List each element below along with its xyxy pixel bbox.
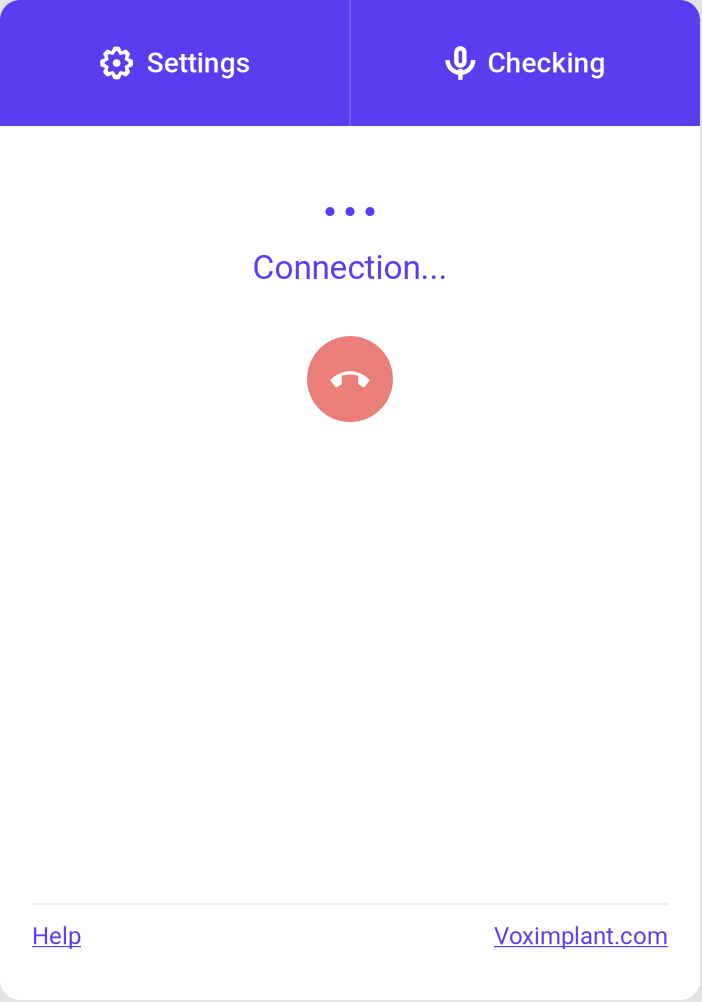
button[interactable]: End call <box>307 336 393 422</box>
button[interactable]: Checking <box>351 0 700 126</box>
staticText: Voximplant.com <box>494 922 668 950</box>
button[interactable]: Voximplant.com <box>494 922 668 950</box>
staticText: Connection... <box>252 248 447 287</box>
button[interactable]: Settings <box>0 0 349 126</box>
button[interactable]: Help <box>32 922 81 950</box>
staticText: Settings <box>147 47 250 79</box>
staticText: Checking <box>487 47 605 79</box>
staticText: Help <box>32 922 81 950</box>
